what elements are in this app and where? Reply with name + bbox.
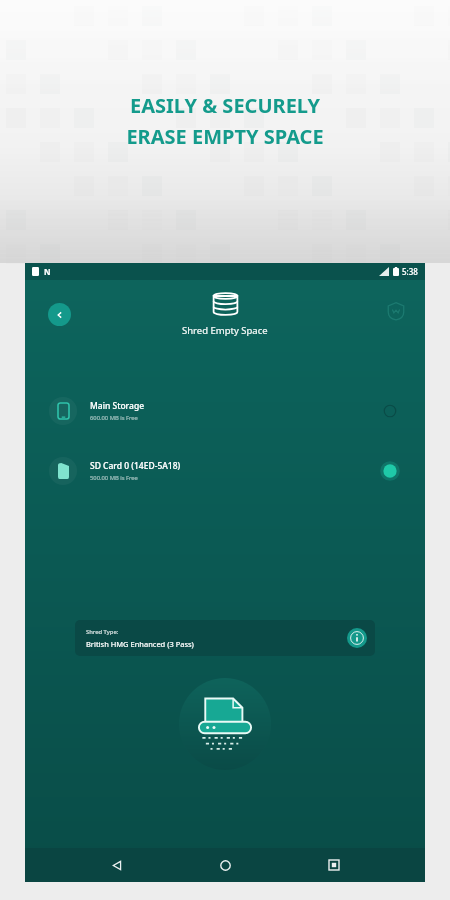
staticText: 5:38 — [402, 266, 418, 277]
staticText: ERASE EMPTY SPACE — [126, 123, 324, 150]
button[interactable]: Home — [208, 848, 242, 882]
button[interactable]: Shred Type: — [75, 620, 375, 656]
button[interactable]: Back — [48, 303, 71, 326]
staticText: Shred Type: — [86, 628, 119, 636]
button[interactable]: Start shredding — [179, 678, 271, 770]
staticText: SD Card 0 (14ED-5A18) — [90, 460, 181, 472]
button[interactable]: Back — [100, 848, 134, 882]
staticText: N — [44, 266, 51, 277]
button[interactable]: Protection — [387, 302, 405, 320]
button[interactable]: Recents — [317, 848, 351, 882]
button[interactable]: Main Storage — [25, 392, 425, 430]
staticText: Shred Empty Space — [182, 324, 268, 337]
staticText: 600.00 MB is Free — [90, 414, 138, 422]
staticText: 500.00 MB is Free — [90, 474, 138, 482]
button[interactable]: SD Card 0 (14ED-5A18) — [25, 452, 425, 490]
staticText: Main Storage — [90, 400, 145, 412]
staticText: British HMG Enhanced (3 Pass) — [86, 639, 194, 649]
staticText: EASILY & SECURELY — [130, 92, 320, 119]
button[interactable]: Info — [347, 628, 367, 648]
